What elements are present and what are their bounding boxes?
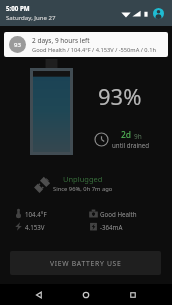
staticText: Unplugged bbox=[63, 174, 103, 184]
button[interactable]: Home bbox=[68, 284, 104, 305]
button[interactable]: 93 bbox=[4, 32, 168, 57]
staticText: 104.4°F bbox=[25, 210, 47, 218]
button[interactable]: VIEW BATTERY USE bbox=[10, 251, 161, 275]
button[interactable]: Back bbox=[21, 284, 57, 305]
staticText: Saturday, June 27 bbox=[6, 13, 56, 21]
staticText: -364mA bbox=[100, 223, 123, 231]
button[interactable]: Recents bbox=[115, 284, 151, 305]
staticText: until drained bbox=[112, 141, 150, 149]
staticText: 2d bbox=[121, 129, 132, 141]
staticText: VIEW BATTERY USE bbox=[50, 259, 122, 268]
staticText: 5:00 PM bbox=[6, 4, 30, 12]
staticText: 93 bbox=[14, 41, 21, 49]
other: Account bbox=[153, 8, 164, 19]
staticText: Good Health bbox=[100, 210, 137, 218]
staticText: 4.153V bbox=[25, 223, 45, 231]
staticText: Good Health / 104.4°F / 4.153V / -550mA … bbox=[32, 46, 156, 54]
staticText: 93% bbox=[98, 81, 142, 111]
staticText: 9h bbox=[134, 132, 142, 141]
staticText: 2 days, 9 hours left bbox=[32, 36, 90, 45]
staticText: Since 96%, 0h 7m ago bbox=[53, 185, 113, 193]
